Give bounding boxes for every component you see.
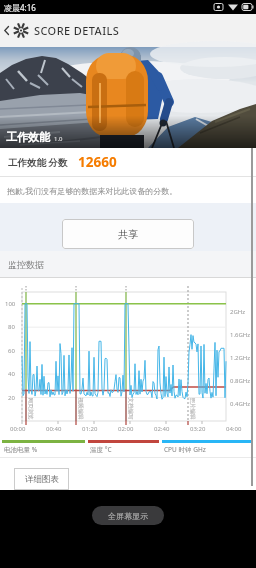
staticText: 2GHz (230, 308, 246, 316)
staticText: 电池电量 % (4, 445, 38, 454)
staticText: 20 (8, 394, 15, 402)
staticText: 00:00 (10, 425, 26, 433)
staticText: 80 (8, 323, 15, 331)
staticText: 12660 (78, 153, 117, 171)
staticText: 全屏幕显示 (108, 511, 148, 521)
staticText: 0.4GHz (230, 400, 251, 408)
button[interactable]: SCORE DETAILS (0, 14, 256, 47)
staticText: 100 (5, 300, 16, 308)
staticText: SCORE DETAILS (34, 23, 120, 38)
staticText: 02:00 (118, 425, 134, 433)
button[interactable]: 全屏幕显示 (92, 506, 164, 525)
staticText: 详细图表 (25, 474, 59, 485)
staticText: 1.0 (54, 135, 63, 143)
staticText: 00:40 (46, 425, 62, 433)
staticText: 工作效能 (6, 130, 50, 144)
button[interactable]: 详细图表 (14, 468, 69, 490)
staticText: 60 (8, 347, 15, 355)
staticText: 03:20 (190, 425, 206, 433)
staticText: 0.8GHz (230, 377, 251, 385)
staticText: 1.6GHz (230, 331, 251, 339)
staticText: 文档编写 (126, 397, 133, 419)
staticText: 监控数据 (8, 259, 44, 270)
staticText: 共享 (118, 228, 138, 241)
staticText: 凌晨4:16 (4, 2, 36, 13)
staticText: CPU 时钟 GHz (164, 445, 206, 454)
staticText: 温度 °C (90, 445, 112, 454)
staticText: 工作效能 分数 (8, 156, 68, 169)
staticText: 1.2GHz (230, 354, 251, 362)
staticText: 照片编辑 (188, 397, 195, 419)
staticText: 视频编辑 (76, 397, 83, 419)
staticText: 40 (8, 370, 15, 378)
staticText: 01:20 (82, 425, 98, 433)
button[interactable]: 共享 (62, 219, 194, 249)
staticText: 网页浏览 (26, 397, 33, 419)
staticText: 抱歉,我们没有足够的数据来对比此设备的分数。 (7, 185, 178, 196)
staticText: 04:00 (226, 425, 242, 433)
staticText: 02:40 (154, 425, 170, 433)
